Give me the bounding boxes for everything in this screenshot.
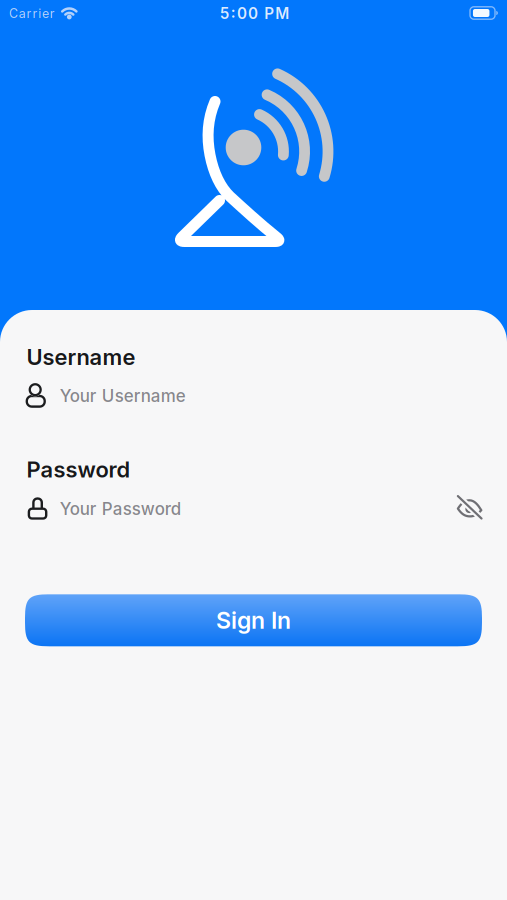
staticText: Username bbox=[26, 344, 135, 370]
staticText: Your Username bbox=[60, 386, 186, 406]
staticText: Sign In bbox=[216, 606, 291, 634]
staticText: Your Password bbox=[60, 499, 181, 519]
textField[interactable]: Your Password bbox=[60, 499, 380, 519]
staticText: Your Username bbox=[60, 386, 186, 406]
button[interactable]: Show password bbox=[456, 494, 484, 522]
staticText: Password bbox=[26, 456, 130, 483]
button[interactable]: Sign In bbox=[25, 594, 482, 646]
staticText: Carrier bbox=[9, 6, 55, 21]
staticText: Your Password bbox=[60, 499, 181, 519]
textField[interactable]: Your Username bbox=[60, 386, 380, 406]
staticText: 5:00 PM bbox=[220, 4, 289, 23]
